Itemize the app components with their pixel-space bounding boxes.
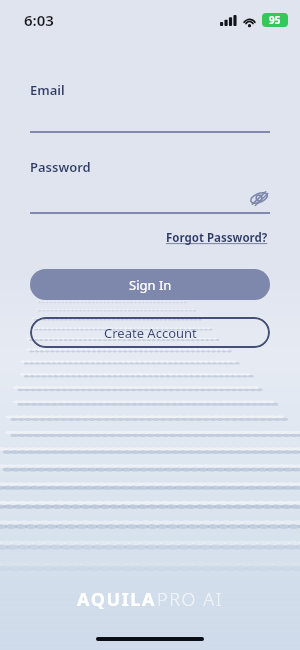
staticText: AQUILA <box>77 587 157 612</box>
staticText: Email <box>30 81 65 99</box>
staticText: PRO AI <box>157 587 224 612</box>
button[interactable]: Sign In <box>30 269 270 300</box>
staticText: Forgot Password? <box>166 230 268 246</box>
staticText: 6:03 <box>24 10 54 30</box>
button[interactable]: Create Account <box>30 317 270 348</box>
staticText: Password <box>30 158 91 176</box>
button[interactable]: Forgot Password? <box>164 228 270 248</box>
staticText: Sign In <box>129 276 172 294</box>
button[interactable]: Show password <box>248 187 270 209</box>
staticText: Create Account <box>104 324 197 342</box>
staticText: 95 <box>269 13 281 27</box>
